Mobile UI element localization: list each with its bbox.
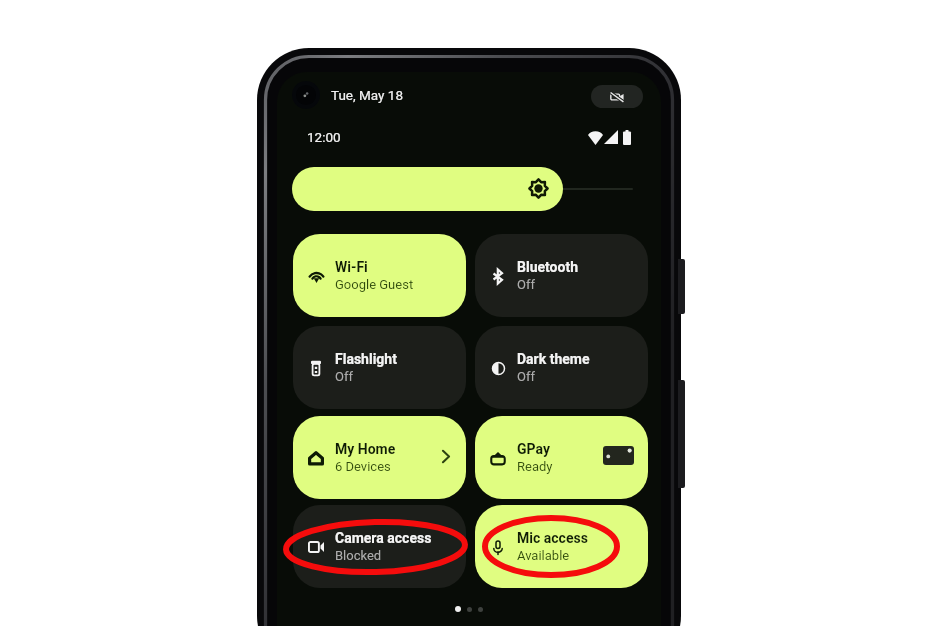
staticText: Mic access <box>517 530 588 546</box>
button[interactable]: GPay <box>475 416 648 499</box>
staticText: Off <box>517 277 535 292</box>
button[interactable]: My Home <box>293 416 466 499</box>
staticText: Google Guest <box>335 277 414 292</box>
staticText: Flashlight <box>335 351 397 367</box>
button[interactable]: Brightness <box>292 167 563 211</box>
staticText: Available <box>517 548 570 563</box>
button[interactable]: Flashlight <box>293 326 466 409</box>
staticText: GPay <box>517 441 550 457</box>
staticText: Dark theme <box>517 351 590 367</box>
staticText: Bluetooth <box>517 259 578 275</box>
button[interactable]: Wi-Fi <box>293 234 466 317</box>
button[interactable]: Camera access <box>293 505 466 588</box>
staticText: Wi-Fi <box>335 259 368 275</box>
button[interactable]: Mic access <box>475 505 648 588</box>
staticText: Ready <box>517 459 553 474</box>
staticText: Off <box>517 369 535 384</box>
staticText: Camera access <box>335 530 432 546</box>
staticText: My Home <box>335 441 396 457</box>
staticText: Off <box>335 369 353 384</box>
staticText: 6 Devices <box>335 459 391 474</box>
button[interactable]: Dark theme <box>475 326 648 409</box>
staticText: Tue, May 18 <box>331 87 403 103</box>
staticText: Blocked <box>335 548 382 563</box>
staticText: 12:00 <box>307 129 341 145</box>
button[interactable]: Bluetooth <box>475 234 648 317</box>
button[interactable]: Camera blocked <box>591 85 643 108</box>
